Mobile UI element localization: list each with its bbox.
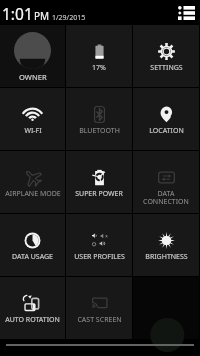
staticText: 1:01 — [2, 3, 33, 24]
staticText: 17% — [92, 63, 106, 73]
staticText: DATA USAGE — [12, 252, 53, 262]
staticText: CAST SCREEN — [77, 315, 122, 325]
button[interactable]: Notifications — [178, 6, 195, 20]
button[interactable]: DATA USAGE — [0, 214, 65, 276]
staticText: WI-FI — [24, 126, 42, 136]
button[interactable]: AUTO ROTATION — [0, 277, 65, 339]
button[interactable]: 17% — [66, 25, 132, 87]
button[interactable]: CAST SCREEN — [66, 277, 132, 339]
button[interactable]: SUPER POWER — [66, 151, 132, 213]
staticText: 1/29/2015 — [52, 13, 86, 23]
staticText: PM — [34, 9, 50, 23]
staticText: SUPER POWER — [75, 189, 123, 199]
button[interactable]: BLUETOOTH — [66, 88, 132, 150]
staticText: OWNER — [19, 72, 47, 82]
button[interactable]: DATA CONNECTION — [133, 151, 199, 213]
staticText: DATA CONNECTION — [143, 189, 189, 206]
button[interactable]: AIRPLANE MODE — [0, 151, 65, 213]
staticText: BLUETOOTH — [79, 126, 120, 136]
staticText: SETTINGS — [150, 63, 183, 73]
staticText: USER PROFILES — [74, 252, 125, 262]
staticText: LOCATION — [149, 126, 184, 136]
staticText: AUTO ROTATION — [5, 315, 60, 325]
staticText: AIRPLANE MODE — [5, 189, 61, 199]
button[interactable] — [133, 277, 199, 339]
button[interactable]: WI-FI — [0, 88, 65, 150]
button[interactable]: BRIGHTNESS — [133, 214, 199, 276]
staticText: BRIGHTNESS — [145, 252, 188, 262]
button[interactable]: LOCATION — [133, 88, 199, 150]
button[interactable]: SETTINGS — [133, 25, 199, 87]
button[interactable]: OWNER — [0, 25, 65, 87]
button[interactable]: USER PROFILES — [66, 214, 132, 276]
